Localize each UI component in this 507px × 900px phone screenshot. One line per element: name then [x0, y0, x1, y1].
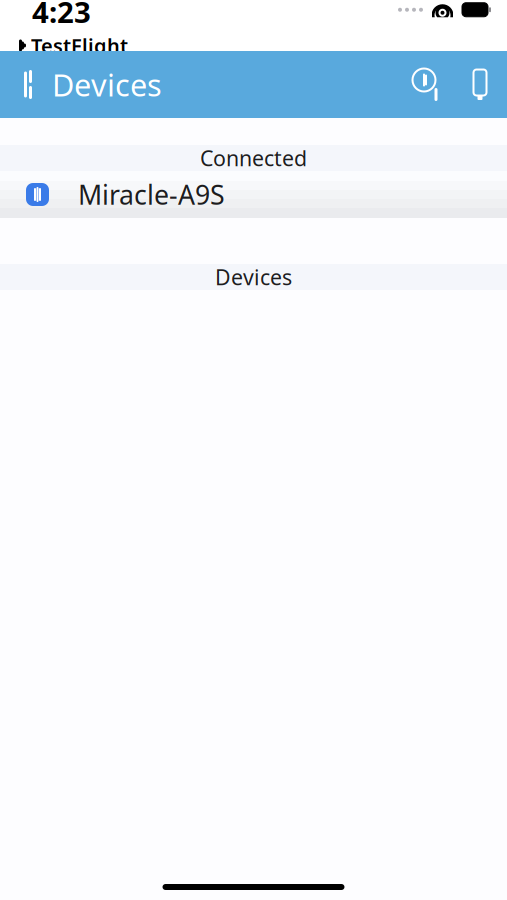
staticText: Devices: [52, 64, 162, 105]
staticText: Devices: [215, 263, 292, 291]
staticText: 4:23: [32, 0, 91, 31]
staticText: TestFlight: [31, 32, 128, 59]
button[interactable]: Miracle-A9S: [0, 171, 507, 218]
staticText: Connected: [200, 144, 307, 172]
staticText: Miracle-A9S: [78, 177, 225, 212]
button[interactable]: Scan for Bluetooth devices: [401, 51, 453, 118]
button[interactable]: Edit: [453, 51, 507, 118]
button[interactable]: Back to Devices: [0, 51, 172, 118]
